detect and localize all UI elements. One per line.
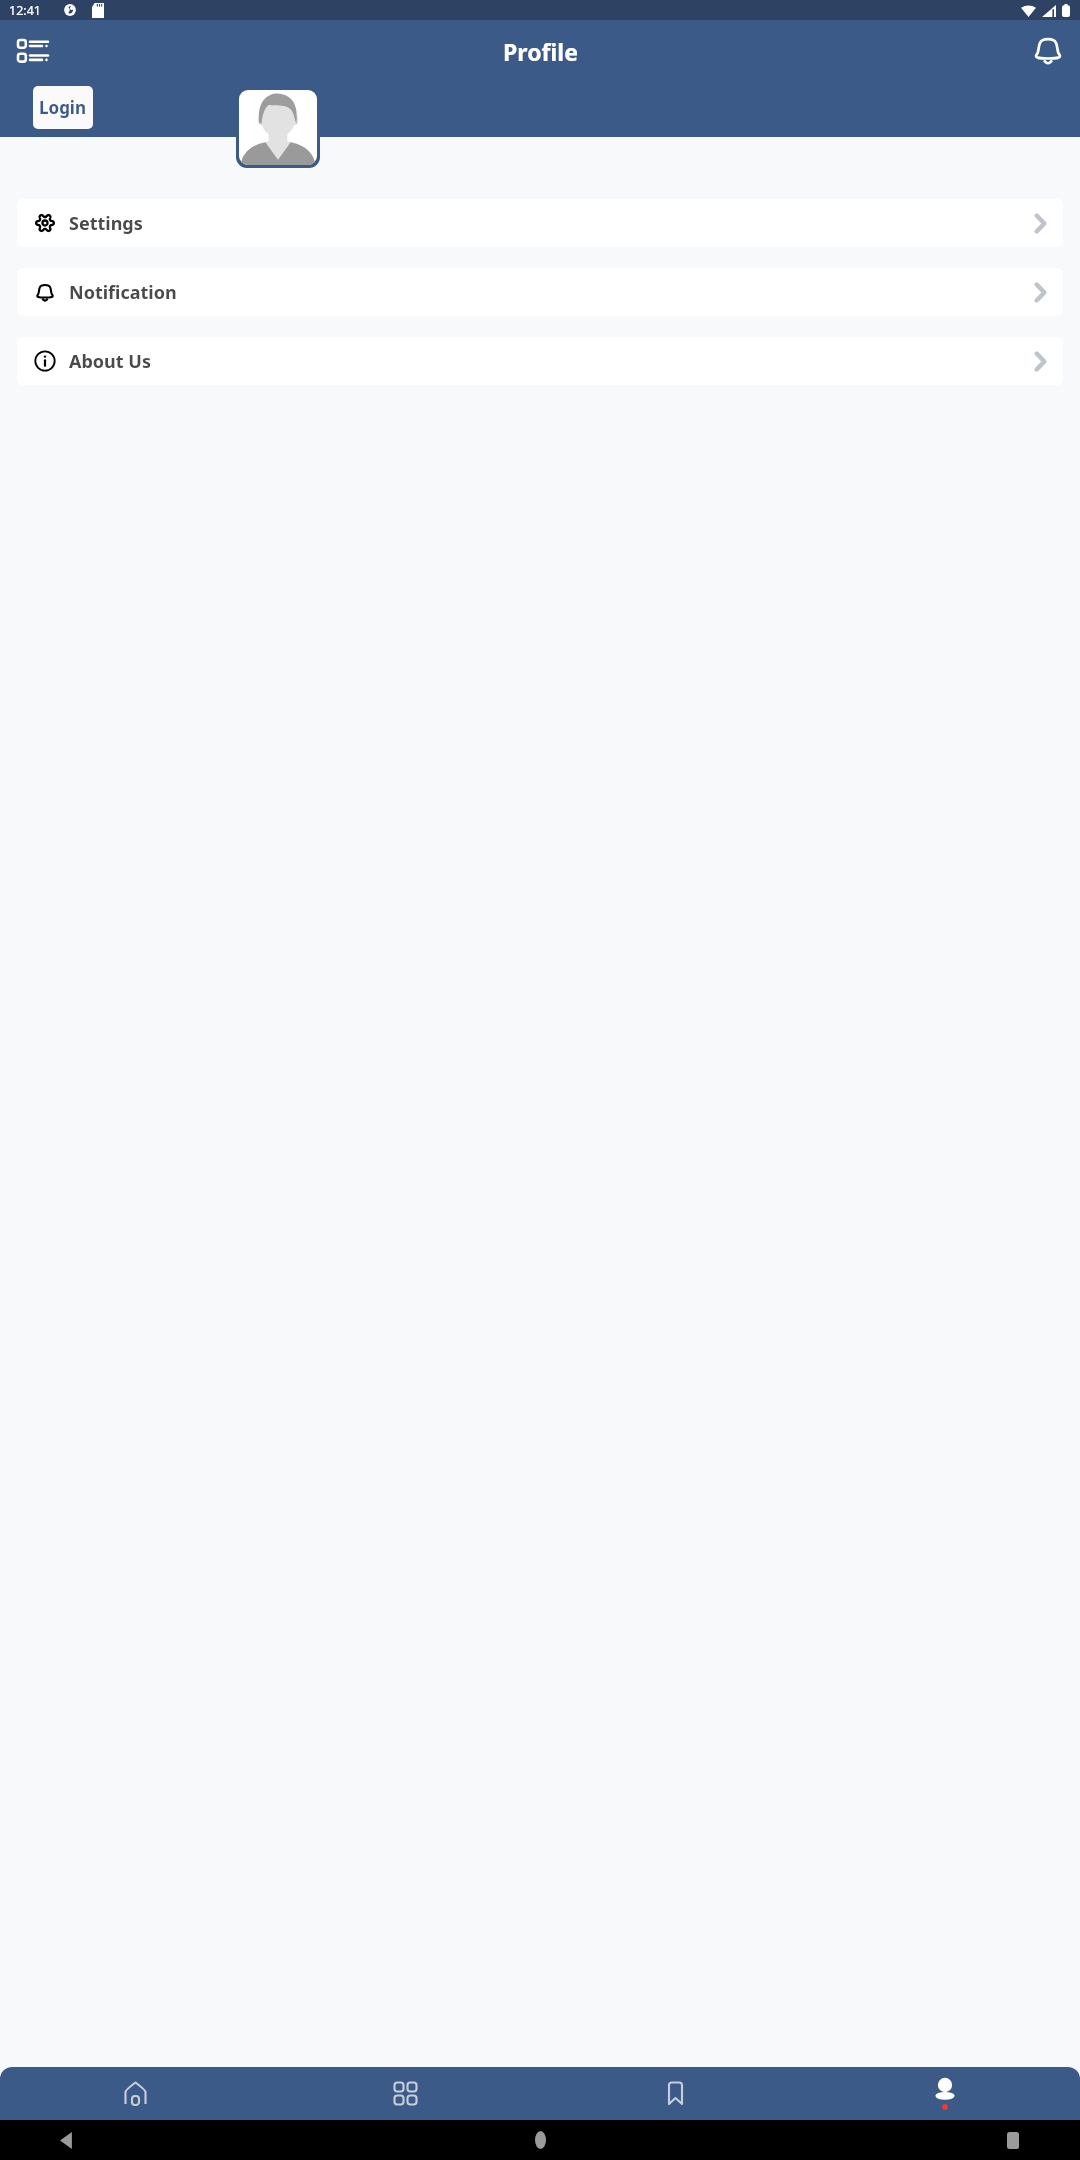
button[interactable]: Bookmarks xyxy=(540,2067,810,2120)
staticText: Login xyxy=(39,96,87,119)
button[interactable]: Profile photo xyxy=(239,90,317,165)
staticText: Notification xyxy=(69,280,177,305)
button[interactable]: Recents xyxy=(998,2125,1028,2155)
staticText: Profile xyxy=(503,36,578,67)
button[interactable]: Back xyxy=(52,2125,82,2155)
button[interactable]: Home xyxy=(525,2125,555,2155)
button[interactable]: Profile xyxy=(810,2067,1080,2120)
button[interactable]: Notifications xyxy=(1031,33,1065,67)
button[interactable]: Home xyxy=(0,2067,270,2120)
button[interactable]: About Us xyxy=(17,337,1063,385)
button[interactable]: Categories xyxy=(270,2067,540,2120)
button[interactable]: Notification xyxy=(17,268,1063,316)
button[interactable]: Menu xyxy=(11,30,55,74)
staticText: About Us xyxy=(69,349,151,374)
staticText: 12:41 xyxy=(9,2,41,19)
button[interactable]: Login xyxy=(33,86,93,129)
button[interactable]: Settings xyxy=(17,199,1063,247)
staticText: Settings xyxy=(69,211,143,236)
